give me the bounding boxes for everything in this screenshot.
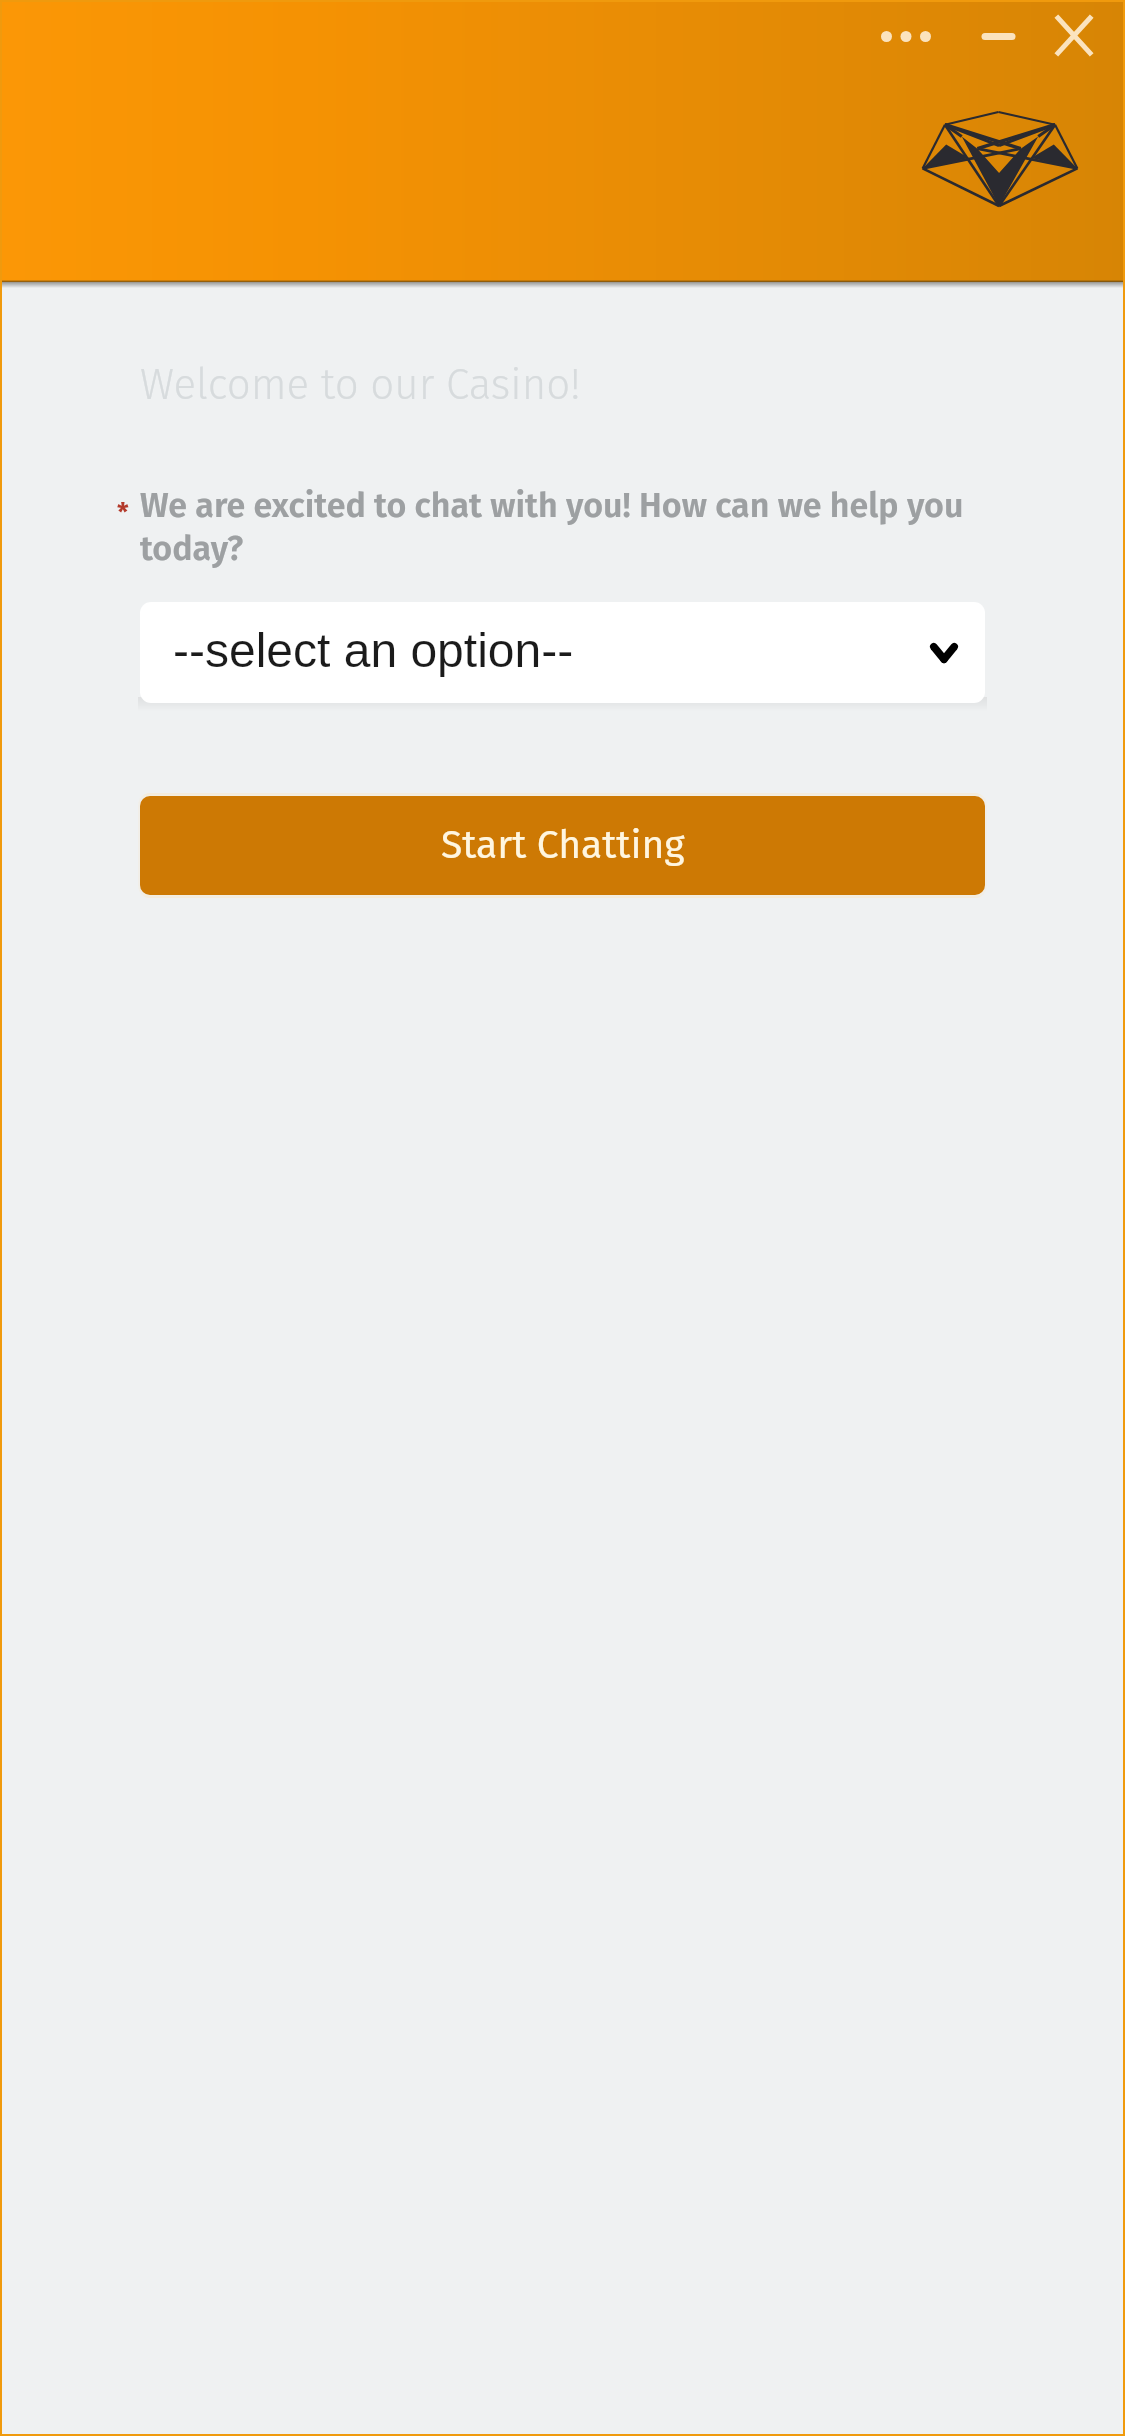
button[interactable]: --select an option-- [140, 602, 985, 703]
staticText: We are excited to chat with you! How can… [140, 485, 985, 569]
button[interactable]: Close [1046, 6, 1102, 64]
button[interactable]: Minimize [962, 8, 1034, 64]
staticText: Start Chatting [441, 822, 685, 869]
button[interactable]: Start Chatting [140, 796, 985, 895]
staticText: * [117, 497, 129, 528]
staticText: Welcome to our Casino! [140, 360, 581, 410]
button[interactable]: More options [862, 10, 950, 62]
staticText: --select an option-- [173, 624, 574, 678]
